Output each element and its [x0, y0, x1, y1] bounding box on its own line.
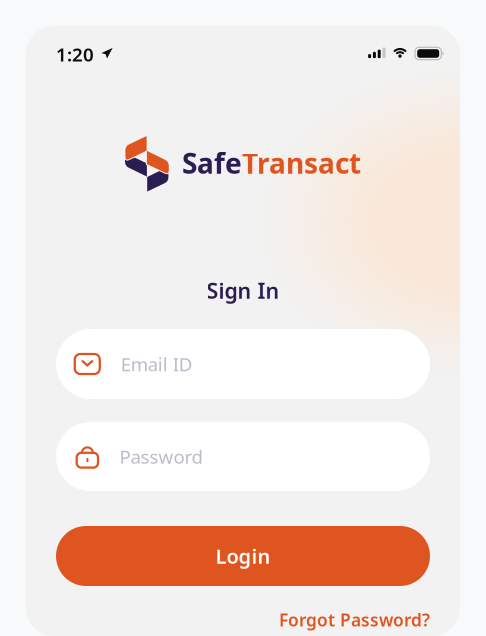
- staticText: Transact: [242, 144, 361, 182]
- staticText: Forgot Password?: [279, 608, 430, 632]
- button[interactable]: Email ID: [56, 329, 430, 399]
- staticText: Safe: [182, 144, 242, 182]
- staticText: Email ID: [121, 351, 193, 377]
- button[interactable]: Forgot Password?: [279, 608, 430, 632]
- staticText: 1:20: [56, 41, 94, 67]
- staticText: Login: [215, 542, 270, 570]
- button[interactable]: Login: [56, 526, 430, 586]
- staticText: Sign In: [206, 276, 279, 305]
- button[interactable]: Password: [56, 422, 430, 491]
- staticText: Password: [119, 444, 202, 469]
